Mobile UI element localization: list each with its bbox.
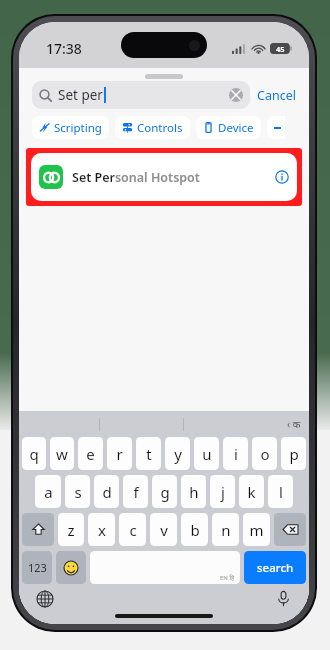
staticText: u	[202, 444, 212, 464]
button[interactable]: a	[35, 475, 61, 508]
button[interactable]: Controls	[115, 116, 190, 139]
button[interactable]: Set Personal Hotspot	[31, 153, 297, 201]
staticText: p	[289, 444, 299, 464]
button[interactable]: r	[107, 437, 132, 470]
button[interactable]: m	[243, 513, 270, 546]
staticText: v	[160, 520, 168, 540]
button[interactable]: Switch keyboard language	[35, 589, 55, 609]
staticText: d	[102, 482, 112, 502]
staticText: g	[160, 482, 170, 502]
staticText: h	[189, 482, 199, 502]
button[interactable]: Emoji	[56, 551, 86, 584]
button[interactable]: n	[212, 513, 239, 546]
button[interactable]: Backspace	[274, 513, 306, 546]
staticText: Set Personal Hotspot	[72, 169, 200, 186]
button[interactable]: b	[181, 513, 208, 546]
staticText: q	[29, 444, 39, 464]
button[interactable]: Clear text	[229, 88, 243, 102]
button[interactable]: z	[58, 513, 84, 546]
staticText: 123	[28, 560, 47, 575]
staticText: Set per	[58, 86, 103, 104]
button[interactable]: Shift	[22, 513, 54, 546]
button[interactable]: u	[194, 437, 219, 470]
button[interactable]: Dictation	[273, 588, 293, 608]
button[interactable]: Info	[275, 170, 289, 184]
staticText: Scripting	[54, 120, 102, 136]
button[interactable]: f	[123, 475, 148, 508]
staticText: EN हि	[220, 574, 235, 582]
staticText: j	[221, 482, 225, 502]
button[interactable]: c	[119, 513, 146, 546]
button[interactable]: Set per	[32, 81, 250, 109]
button[interactable]: Device	[196, 116, 261, 139]
button[interactable]: s	[65, 475, 90, 508]
button[interactable]: Scripting	[32, 116, 109, 139]
button[interactable]: o	[252, 437, 277, 470]
staticText: Controls	[137, 120, 183, 136]
staticText: Device	[218, 120, 254, 136]
staticText: f	[133, 482, 139, 502]
button[interactable]: g	[152, 475, 177, 508]
staticText: Cancel	[257, 87, 296, 104]
button[interactable]: x	[88, 513, 115, 546]
button[interactable]: l	[268, 475, 293, 508]
button[interactable]: 123	[22, 551, 52, 584]
staticText: x	[98, 520, 106, 540]
staticText: z	[67, 520, 75, 540]
staticText: n	[221, 520, 231, 540]
button[interactable]: y	[165, 437, 190, 470]
staticText: b	[190, 520, 200, 540]
button[interactable]: j	[210, 475, 235, 508]
button[interactable]: e	[78, 437, 103, 470]
staticText: o	[260, 444, 270, 464]
button[interactable]: i	[223, 437, 248, 470]
button[interactable]: t	[136, 437, 161, 470]
staticText: search	[257, 560, 294, 576]
staticText: r	[116, 444, 123, 464]
staticText: t	[146, 444, 152, 464]
button[interactable]: h	[181, 475, 206, 508]
staticText: 45	[276, 44, 285, 54]
staticText: i	[234, 444, 238, 464]
staticText: l	[279, 482, 283, 502]
staticText: w	[56, 444, 68, 464]
staticText: k	[247, 482, 256, 502]
button[interactable]: Cancel	[250, 87, 297, 104]
staticText: 17:38	[46, 39, 82, 58]
staticText: e	[86, 444, 95, 464]
button[interactable]: k	[239, 475, 264, 508]
staticText: y	[174, 444, 182, 464]
button[interactable]: Space	[90, 551, 240, 584]
button[interactable]: w	[50, 437, 74, 470]
button[interactable]: v	[150, 513, 177, 546]
button[interactable]	[267, 116, 285, 139]
staticText: ‹ क	[287, 417, 301, 431]
button[interactable]: Language	[287, 417, 301, 431]
button[interactable]: p	[281, 437, 306, 470]
staticText: c	[129, 520, 137, 540]
staticText: a	[44, 482, 53, 502]
staticText: m	[249, 520, 264, 540]
staticText: s	[74, 482, 82, 502]
button[interactable]: search	[244, 551, 306, 584]
button[interactable]: q	[22, 437, 46, 470]
button[interactable]: d	[94, 475, 119, 508]
